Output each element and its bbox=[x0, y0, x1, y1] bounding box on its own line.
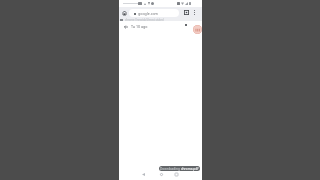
button[interactable]: google.com bbox=[129, 9, 179, 17]
button[interactable]: Search with camera bbox=[182, 8, 191, 17]
staticText: chrome.pdf bbox=[181, 167, 199, 171]
button[interactable]: More options bbox=[191, 9, 198, 16]
staticText: Downloading bbox=[160, 167, 181, 171]
staticText: Tu 10 ago bbox=[131, 24, 148, 29]
button[interactable]: Home bbox=[120, 8, 129, 17]
button[interactable]: Back bbox=[121, 22, 130, 31]
staticText: google.com bbox=[138, 11, 158, 16]
button[interactable]: Home bbox=[157, 170, 166, 179]
button[interactable]: Back bbox=[139, 170, 148, 179]
button[interactable]: Close bbox=[182, 21, 190, 29]
staticText: chrome://newtab/#most-visited bbox=[125, 18, 164, 22]
button[interactable]: Recent apps bbox=[172, 170, 181, 179]
